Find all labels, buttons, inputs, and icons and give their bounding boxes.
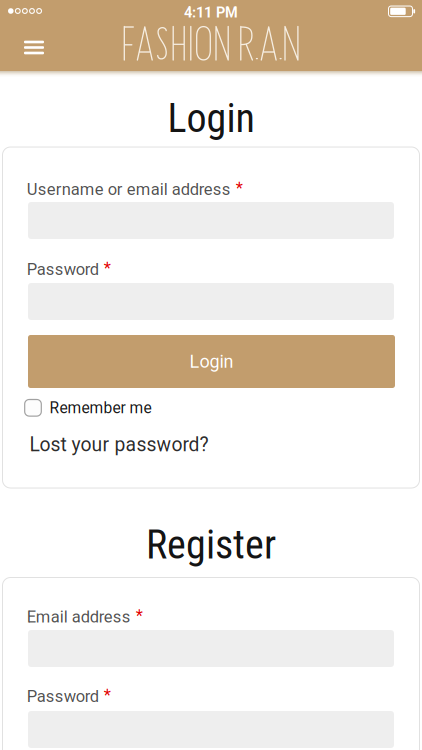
- staticText: Password: [27, 687, 99, 706]
- staticText: *: [104, 258, 111, 278]
- staticText: Lost your password?: [29, 433, 208, 456]
- staticText: *: [236, 178, 243, 198]
- staticText: 4:11 PM: [184, 4, 238, 21]
- staticText: Login: [189, 351, 233, 372]
- staticText: Register: [146, 521, 276, 568]
- button[interactable]: Lost your password?: [29, 433, 208, 456]
- staticText: Username or email address: [27, 180, 231, 199]
- staticText: Password: [27, 260, 99, 279]
- button[interactable]: Menu: [17, 32, 51, 62]
- button[interactable]: Remember me: [25, 399, 41, 416]
- staticText: Login: [167, 95, 254, 142]
- staticText: *: [136, 606, 143, 625]
- button[interactable]: Login: [28, 335, 395, 388]
- staticText: Email address: [27, 607, 131, 626]
- staticText: *: [104, 685, 111, 705]
- staticText: Remember me: [49, 399, 151, 417]
